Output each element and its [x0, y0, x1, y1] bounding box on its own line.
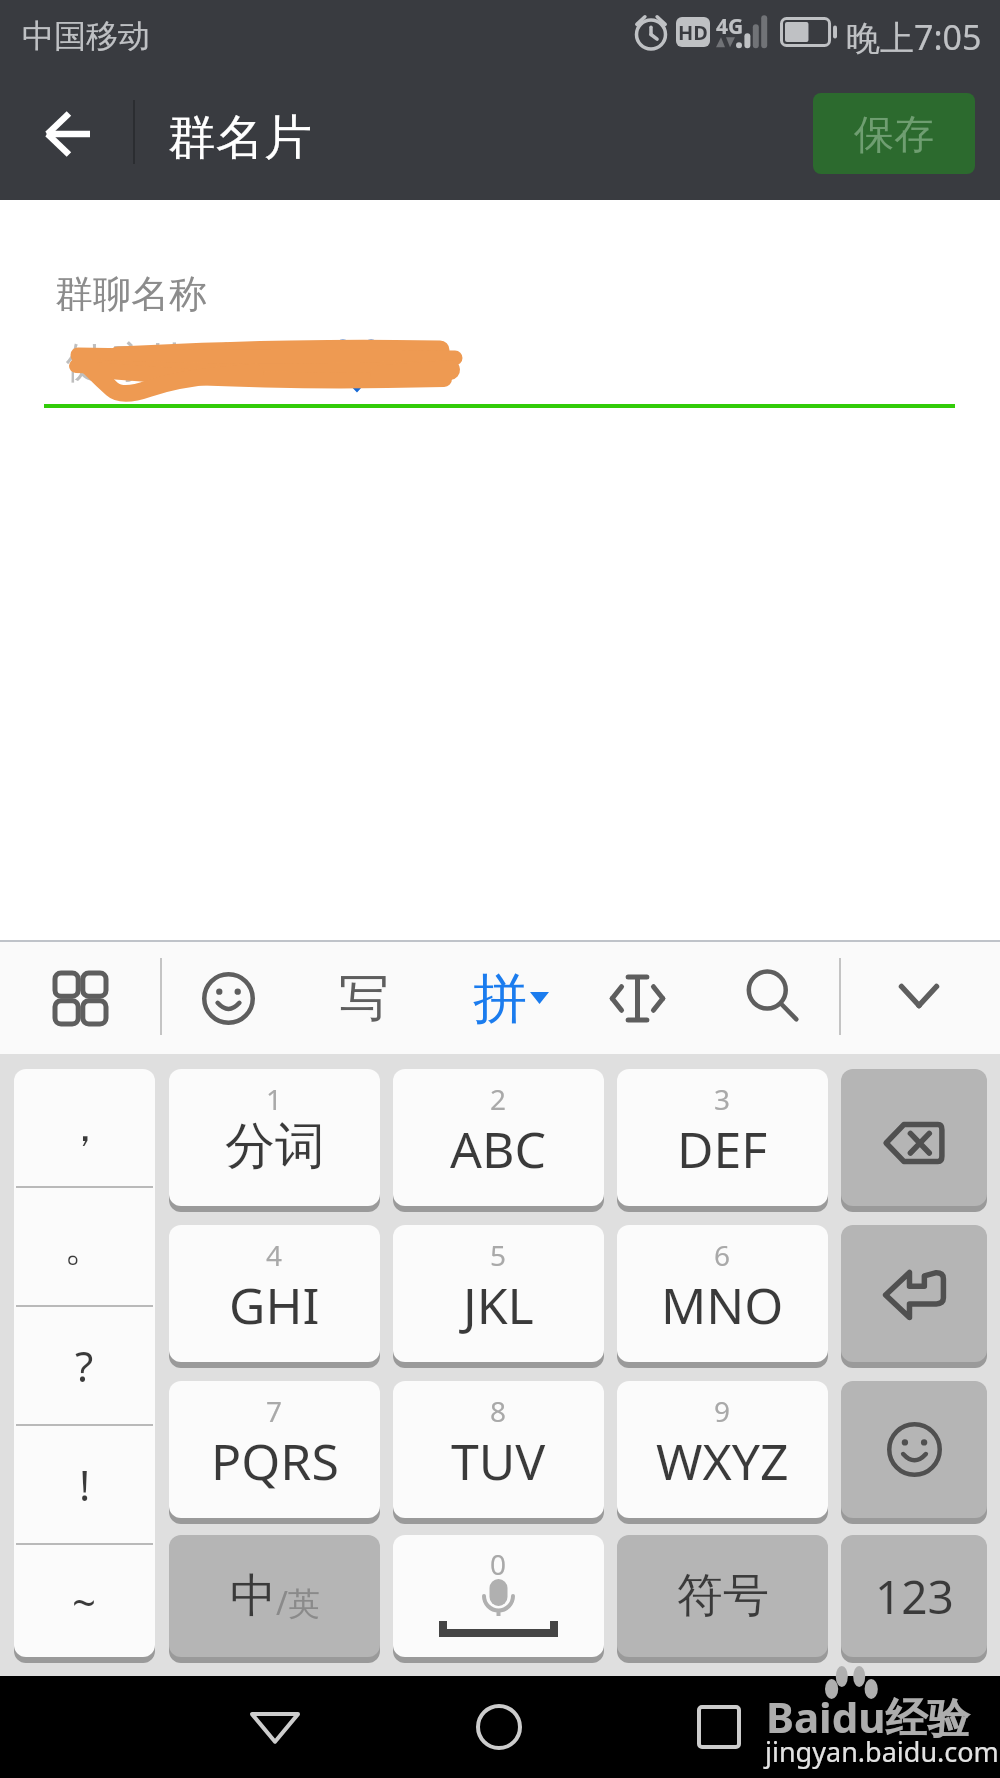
staticText: 符号: [677, 1567, 769, 1625]
staticText: 6: [714, 1236, 731, 1274]
staticText: ?: [75, 1337, 94, 1394]
staticText: 9: [714, 1392, 731, 1430]
button[interactable]: 中: [169, 1535, 380, 1657]
staticText: 写: [339, 967, 389, 1030]
staticText: WXYZ: [656, 1427, 789, 1495]
staticText: 健康快乐每一天 丽: [66, 332, 424, 389]
button[interactable]: Hide keyboard: [863, 940, 975, 1052]
staticText: ，: [64, 1101, 106, 1154]
staticText: !: [79, 1456, 91, 1513]
staticText: /英: [276, 1581, 320, 1625]
staticText: ABC: [450, 1115, 547, 1183]
button[interactable]: 2: [393, 1069, 604, 1206]
button[interactable]: Back: [6, 78, 130, 200]
staticText: 拼: [473, 965, 527, 1033]
button[interactable]: 1: [169, 1069, 380, 1206]
staticText: 8: [490, 1392, 507, 1430]
button[interactable]: ~: [14, 1545, 155, 1657]
button[interactable]: 拼: [460, 940, 565, 1054]
staticText: 。: [64, 1220, 106, 1273]
staticText: Baidu经验: [766, 1688, 970, 1745]
staticText: 3: [714, 1080, 731, 1118]
other: Emoji: [887, 1422, 942, 1477]
button[interactable]: 。: [14, 1188, 155, 1305]
button[interactable]: ，: [14, 1069, 155, 1186]
other: Backspace: [884, 1123, 944, 1163]
button[interactable]: Back: [215, 1676, 335, 1778]
button[interactable]: 123: [841, 1535, 987, 1657]
button[interactable]: 3: [617, 1069, 828, 1206]
staticText: 群名片: [168, 108, 312, 168]
button[interactable]: Search: [717, 940, 829, 1052]
button[interactable]: Home: [439, 1676, 559, 1778]
staticText: 中国移动: [22, 16, 150, 56]
button[interactable]: 6: [617, 1225, 828, 1362]
staticText: DEF: [677, 1115, 768, 1183]
other: Space, voice input: [393, 1535, 604, 1657]
button[interactable]: !: [14, 1426, 155, 1543]
staticText: 4G: [716, 12, 744, 41]
staticText: 1: [266, 1080, 283, 1118]
button[interactable]: Space, voice input: [393, 1535, 604, 1657]
other: Enter: [885, 1271, 944, 1319]
button[interactable]: Enter: [841, 1225, 987, 1362]
staticText: 0: [490, 1545, 507, 1583]
button[interactable]: ?: [14, 1307, 155, 1424]
button[interactable]: 符号: [617, 1535, 828, 1657]
staticText: PQRS: [211, 1427, 339, 1495]
staticText: 123: [875, 1565, 954, 1628]
staticText: 群聊名称: [55, 270, 207, 318]
button[interactable]: Keyboard layouts: [24, 942, 136, 1054]
staticText: 7: [266, 1392, 283, 1430]
button[interactable]: 5: [393, 1225, 604, 1362]
staticText: 分词: [225, 1115, 325, 1178]
button[interactable]: Backspace: [841, 1069, 987, 1206]
staticText: ~: [72, 1573, 97, 1630]
staticText: jingyan.baidu.com: [765, 1733, 999, 1770]
staticText: TUV: [451, 1427, 546, 1495]
staticText: MNO: [661, 1271, 784, 1339]
button[interactable]: 4: [169, 1225, 380, 1362]
button[interactable]: Recents: [659, 1676, 779, 1778]
button[interactable]: Emoji: [172, 942, 284, 1054]
button[interactable]: 8: [393, 1381, 604, 1518]
staticText: JKL: [463, 1271, 534, 1339]
staticText: 2: [490, 1080, 507, 1118]
staticText: HD: [678, 19, 708, 46]
button[interactable]: 9: [617, 1381, 828, 1518]
button[interactable]: 写: [308, 942, 420, 1054]
staticText: 4: [266, 1236, 283, 1274]
staticText: 中: [230, 1567, 276, 1625]
staticText: 晚上7:05: [846, 14, 982, 60]
button[interactable]: 7: [169, 1381, 380, 1518]
staticText: 5: [490, 1236, 507, 1274]
button[interactable]: Move cursor: [581, 942, 693, 1054]
staticText: GHI: [229, 1271, 320, 1339]
staticText: 保存: [854, 109, 934, 159]
button[interactable]: Emoji: [841, 1381, 987, 1518]
button[interactable]: 保存: [813, 93, 975, 174]
